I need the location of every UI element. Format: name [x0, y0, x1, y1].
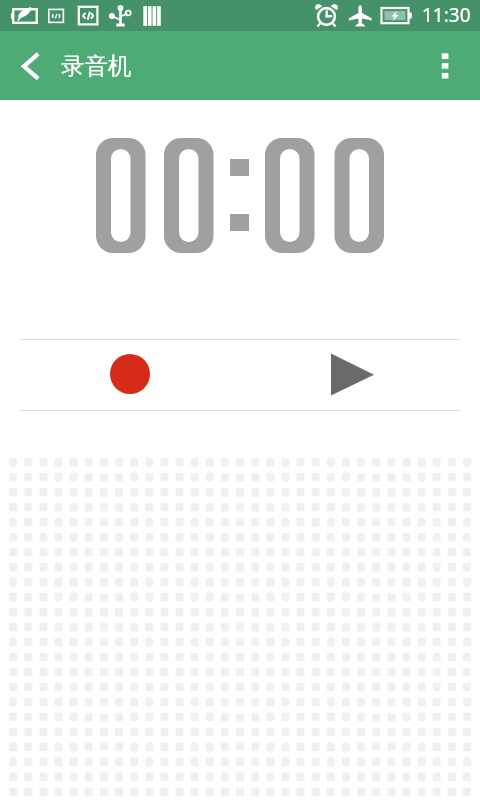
- button[interactable]: Back: [0, 38, 56, 94]
- staticText: 11:30: [422, 2, 471, 28]
- button[interactable]: Record: [90, 334, 170, 414]
- staticText: 录音机: [61, 51, 132, 81]
- button[interactable]: Play: [312, 334, 393, 415]
- button[interactable]: More options: [424, 38, 480, 94]
